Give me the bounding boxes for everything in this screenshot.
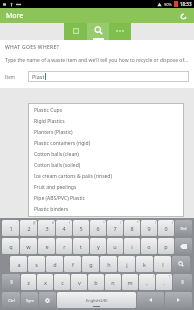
staticText: Plast [32,73,45,80]
button[interactable]: v [71,274,87,290]
staticText: r [63,243,66,250]
button[interactable]: l [154,256,171,272]
button[interactable]: Ice cream cartons & pails (rinsed) [28,171,184,182]
button[interactable]: 1 [2,220,19,236]
staticText: Type the name of a waste item and we'll … [5,57,189,64]
staticText: Sym [26,298,34,303]
button[interactable]: More options [109,23,131,40]
button[interactable]: , [139,274,155,290]
button[interactable]: b [88,274,104,290]
button[interactable]: Cotton balls (soiled) [28,160,184,171]
staticText: u [113,243,117,250]
staticText: Plastic binders [34,206,69,213]
staticText: h [107,261,111,268]
button[interactable]: Planters (Plastic) [28,127,184,138]
button[interactable]: Cursor left [137,292,164,308]
button[interactable]: s [28,256,45,272]
button[interactable]: Cursor right [165,292,192,308]
staticText: z [27,279,30,286]
button[interactable]: p [158,238,174,254]
button[interactable]: Plastic containers (rigid) [28,138,184,149]
staticText: e [45,243,49,250]
button[interactable]: . [156,274,172,290]
button[interactable]: Rigid Plastics [28,116,184,127]
staticText: Del [180,226,187,231]
button[interactable]: 8 [124,220,140,236]
button[interactable]: English(UK) [57,292,136,308]
button[interactable]: Settings [39,292,56,308]
button[interactable]: 4 [56,220,72,236]
staticText: k [143,261,146,268]
staticText: x [44,279,47,286]
button[interactable]: i [124,238,140,254]
button[interactable]: z [21,274,36,290]
button[interactable]: h [100,256,117,272]
staticText: ! [153,275,154,279]
staticText: , [146,279,148,286]
button[interactable]: d [46,256,63,272]
button[interactable]: o [141,238,157,254]
button[interactable]: Plastic Cups [28,105,184,116]
button[interactable]: Sym [21,292,38,308]
staticText: j [126,261,128,268]
staticText: WHAT GOES WHERE? [5,44,60,51]
button[interactable]: y [90,238,106,254]
button[interactable]: u [107,238,123,254]
staticText: s [35,261,38,268]
button[interactable]: ⇧ [2,274,20,290]
button[interactable]: Plastic binders [28,204,184,215]
button[interactable]: Search [87,23,109,40]
button[interactable]: 5 [73,220,89,236]
button[interactable]: Ctrl [2,292,20,308]
button[interactable]: 6 [90,220,106,236]
staticText: l [162,261,164,268]
staticText: ) [172,221,173,225]
staticText: Cotton balls (soiled) [34,162,81,169]
button[interactable]: m [122,274,138,290]
staticText: ( [155,221,156,225]
staticText: 4 [62,225,66,232]
button[interactable]: List [64,23,87,40]
button[interactable]: c [54,274,70,290]
staticText: 18:33 [180,1,192,7]
button[interactable]: f [64,256,81,272]
staticText: English(UK) [86,298,108,303]
staticText: v [78,279,81,286]
staticText: g [89,261,93,268]
button[interactable]: 3 [38,220,55,236]
button[interactable]: Fruit and peelings [28,182,184,193]
button[interactable]: g [82,256,99,272]
button[interactable]: Backspace [175,238,192,254]
button[interactable]: Cotton balls (clean) [28,149,184,160]
staticText: / [69,221,71,225]
staticText: 9 [147,225,151,232]
button[interactable]: Plast [28,71,189,82]
staticText: 8 [130,225,134,232]
button[interactable]: e [38,238,55,254]
button[interactable]: ⇧ [173,274,192,290]
button[interactable]: q [2,238,19,254]
button[interactable]: t [73,238,89,254]
button[interactable]: Search [172,256,190,272]
button[interactable]: 9 [141,220,157,236]
staticText: 5 [79,225,83,232]
staticText: ⇧ [9,279,14,285]
button[interactable]: 2 [20,220,37,236]
button[interactable]: k [136,256,153,272]
button[interactable]: Refresh [177,10,189,22]
button[interactable]: 0 [158,220,174,236]
staticText: 3 [45,225,49,232]
button[interactable]: 7 [107,220,123,236]
staticText: ⇧ [180,279,185,285]
button[interactable]: n [105,274,121,290]
button[interactable]: Pipe (ABS/PVC) Plastic [28,193,184,204]
button[interactable]: a [10,256,27,272]
button[interactable]: w [20,238,37,254]
button[interactable]: Del [175,220,192,236]
staticText: Plastic containers (rigid) [34,140,91,147]
button[interactable]: r [56,238,72,254]
button[interactable]: x [37,274,53,290]
staticText: \ [120,221,122,225]
staticText: Pipe (ABS/PVC) Plastic [34,195,86,202]
button[interactable]: j [118,256,135,272]
